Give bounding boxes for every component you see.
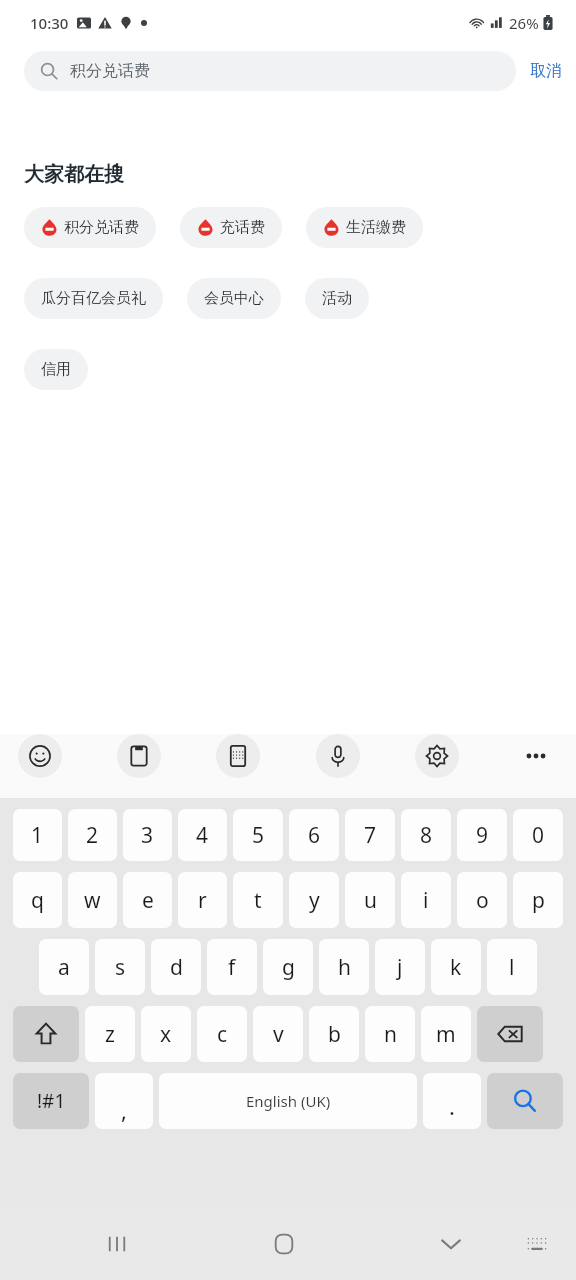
staticText: j xyxy=(397,953,403,982)
button[interactable]: 取消 xyxy=(516,55,576,87)
staticText: 6 xyxy=(308,821,321,850)
button[interactable]: 5 xyxy=(233,809,283,861)
button[interactable]: c xyxy=(197,1006,247,1062)
button[interactable]: 会员中心 xyxy=(187,278,281,319)
button[interactable]: t xyxy=(233,872,283,928)
staticText: 活动 xyxy=(322,289,352,308)
button[interactable]: y xyxy=(289,872,339,928)
button[interactable]: Recents xyxy=(90,1217,144,1271)
button[interactable]: j xyxy=(375,939,425,995)
staticText: 10:30 xyxy=(30,13,69,33)
staticText: 瓜分百亿会员礼 xyxy=(41,289,146,308)
staticText: m xyxy=(436,1020,456,1049)
button[interactable]: 信用 xyxy=(24,349,88,390)
button[interactable]: Stickers xyxy=(216,734,260,778)
staticText: c xyxy=(217,1020,228,1049)
staticText: 1 xyxy=(31,821,44,850)
button[interactable]: w xyxy=(68,872,117,928)
staticText: k xyxy=(450,953,462,982)
button[interactable]: Shift xyxy=(13,1006,79,1062)
button[interactable]: Emoji xyxy=(18,734,62,778)
staticText: !#1 xyxy=(37,1088,66,1114)
button[interactable]: Clipboard xyxy=(117,734,161,778)
button[interactable]: 瓜分百亿会员礼 xyxy=(24,278,163,319)
staticText: 9 xyxy=(476,821,489,850)
button[interactable]: f xyxy=(207,939,257,995)
button[interactable]: 活动 xyxy=(305,278,369,319)
button[interactable]: l xyxy=(487,939,537,995)
button[interactable]: k xyxy=(431,939,481,995)
button[interactable]: 生活缴费 xyxy=(306,207,423,248)
button[interactable]: English (UK) xyxy=(159,1073,417,1129)
staticText: 取消 xyxy=(530,61,562,81)
staticText: v xyxy=(273,1020,284,1049)
staticText: English (UK) xyxy=(246,1091,331,1111)
staticText: e xyxy=(142,886,154,915)
button[interactable]: g xyxy=(263,939,313,995)
button[interactable]: p xyxy=(513,872,563,928)
button[interactable]: Keyboard settings xyxy=(415,734,459,778)
button[interactable]: s xyxy=(95,939,145,995)
staticText: 信用 xyxy=(41,360,71,379)
button[interactable]: More options xyxy=(514,734,558,778)
button[interactable]: 4 xyxy=(178,809,227,861)
staticText: f xyxy=(228,953,236,982)
button[interactable]: 积分兑话费 xyxy=(24,51,516,91)
button[interactable]: q xyxy=(13,872,62,928)
staticText: n xyxy=(384,1020,397,1049)
staticText: p xyxy=(532,886,545,915)
staticText: b xyxy=(328,1020,341,1049)
staticText: 0 xyxy=(532,821,545,850)
button[interactable]: v xyxy=(253,1006,303,1062)
staticText: 5 xyxy=(252,821,265,850)
button[interactable]: 积分兑话费 xyxy=(24,207,156,248)
button[interactable]: Backspace xyxy=(477,1006,543,1062)
staticText: o xyxy=(476,886,489,915)
button[interactable]: x xyxy=(141,1006,191,1062)
button[interactable]: n xyxy=(365,1006,415,1062)
button[interactable]: z xyxy=(85,1006,135,1062)
staticText: 3 xyxy=(141,821,154,850)
button[interactable]: , xyxy=(95,1073,153,1129)
button[interactable]: !#1 xyxy=(13,1073,89,1129)
button[interactable]: Change keyboard xyxy=(512,1219,562,1269)
button[interactable]: Search xyxy=(487,1073,563,1129)
button[interactable]: 充话费 xyxy=(180,207,282,248)
button[interactable]: i xyxy=(401,872,451,928)
button[interactable]: h xyxy=(319,939,369,995)
button[interactable]: 9 xyxy=(457,809,507,861)
button[interactable]: 0 xyxy=(513,809,563,861)
button[interactable]: . xyxy=(423,1073,481,1129)
staticText: r xyxy=(198,886,207,915)
button[interactable]: 8 xyxy=(401,809,451,861)
button[interactable]: b xyxy=(309,1006,359,1062)
button[interactable]: d xyxy=(151,939,201,995)
staticText: s xyxy=(115,953,126,982)
button[interactable]: 7 xyxy=(345,809,395,861)
staticText: a xyxy=(58,953,70,982)
button[interactable]: m xyxy=(421,1006,471,1062)
staticText: 26% xyxy=(509,13,539,33)
staticText: g xyxy=(282,953,295,982)
staticText: q xyxy=(31,886,44,915)
staticText: 会员中心 xyxy=(204,289,264,308)
staticText: 7 xyxy=(364,821,377,850)
button[interactable]: Hide keyboard xyxy=(424,1217,478,1271)
staticText: t xyxy=(254,886,262,915)
button[interactable]: u xyxy=(345,872,395,928)
button[interactable]: Home xyxy=(257,1217,311,1271)
staticText: , xyxy=(121,1095,127,1125)
button[interactable]: e xyxy=(123,872,172,928)
staticText: w xyxy=(84,886,101,915)
button[interactable]: a xyxy=(39,939,89,995)
button[interactable]: 2 xyxy=(68,809,117,861)
button[interactable]: 3 xyxy=(123,809,172,861)
button[interactable]: r xyxy=(178,872,227,928)
staticText: u xyxy=(364,886,377,915)
button[interactable]: Voice input xyxy=(316,734,360,778)
staticText: 4 xyxy=(196,821,209,850)
button[interactable]: 1 xyxy=(13,809,62,861)
button[interactable]: 6 xyxy=(289,809,339,861)
staticText: 大家都在搜 xyxy=(24,162,124,187)
button[interactable]: o xyxy=(457,872,507,928)
